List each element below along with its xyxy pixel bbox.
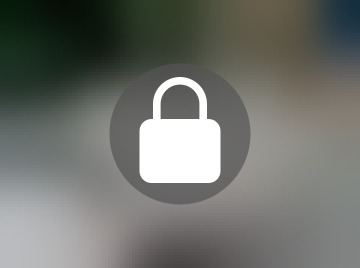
button[interactable]: Locked content [109, 63, 250, 204]
